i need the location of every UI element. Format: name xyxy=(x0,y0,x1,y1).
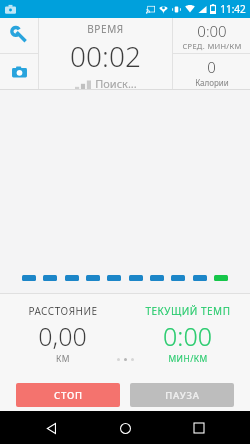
button[interactable]: ТЕКУЩИЙ ТЕМП xyxy=(125,294,250,378)
staticText: 0:00 xyxy=(197,21,227,41)
staticText: МИН/КМ xyxy=(168,353,208,365)
staticText: СТОП xyxy=(54,389,83,402)
button[interactable]: Back xyxy=(36,413,66,443)
staticText: Калории xyxy=(195,77,229,88)
staticText: 00:02 xyxy=(70,37,141,75)
button[interactable]: 0 xyxy=(173,54,250,90)
button[interactable]: РАССТОЯНИЕ xyxy=(0,294,125,378)
button[interactable]: СТОП xyxy=(16,383,120,407)
staticText: 0 xyxy=(207,57,216,77)
button[interactable]: Camera xyxy=(0,54,38,90)
staticText: СРЕД. МИН/КМ xyxy=(182,41,242,51)
button[interactable]: 0:00 xyxy=(173,18,250,53)
staticText: ПАУЗА xyxy=(165,389,200,402)
button[interactable]: ПАУЗА xyxy=(130,383,234,407)
button[interactable]: ВРЕМЯ xyxy=(39,18,172,90)
staticText: Поиск... xyxy=(95,76,137,90)
staticText: 11:42 xyxy=(220,2,246,16)
staticText: РАССТОЯНИЕ xyxy=(28,304,98,318)
button[interactable]: Settings xyxy=(0,18,38,53)
staticText: КМ xyxy=(56,353,70,365)
staticText: ТЕКУЩИЙ ТЕМП xyxy=(145,304,231,318)
button[interactable]: Home xyxy=(110,413,140,443)
staticText: 0,00 xyxy=(38,319,87,353)
staticText: ВРЕМЯ xyxy=(87,22,124,36)
button[interactable]: Recent apps xyxy=(184,413,214,443)
staticText: 0:00 xyxy=(163,319,212,353)
